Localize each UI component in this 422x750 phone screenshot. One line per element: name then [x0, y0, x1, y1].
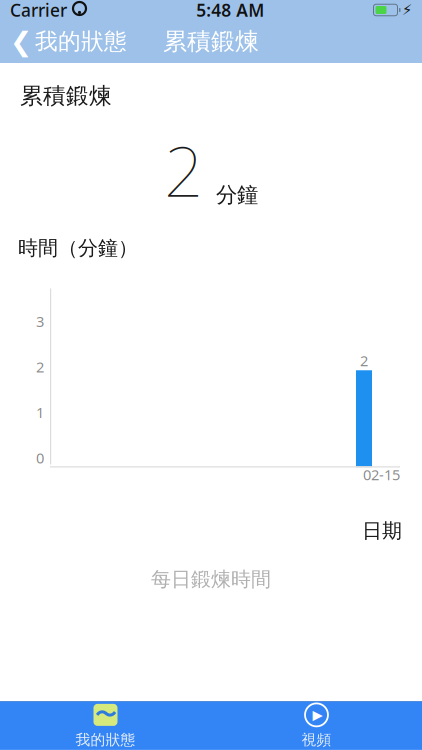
staticText: ▶ — [312, 707, 322, 722]
staticText: 0 — [36, 448, 44, 467]
staticText: 〜 — [95, 702, 116, 728]
staticText: 我的狀態 — [35, 28, 127, 55]
staticText: ⚡︎ — [402, 2, 412, 18]
staticText: 3 — [36, 311, 44, 331]
staticText: 2 — [36, 357, 44, 376]
staticText: 5:48 AM — [196, 0, 264, 21]
staticText: 視頻 — [301, 731, 331, 749]
staticText: 累積鍛煉 — [20, 82, 112, 110]
staticText: 我的狀態 — [75, 731, 135, 749]
staticText: 分鐘 — [216, 182, 258, 208]
button[interactable]: ❮ — [0, 20, 127, 63]
staticText: 1 — [36, 402, 44, 422]
staticText: Carrier — [10, 0, 67, 21]
button[interactable]: 〜 — [0, 698, 211, 750]
button[interactable]: ▶ — [211, 698, 422, 750]
staticText: 日期 — [362, 518, 402, 543]
staticText: 每日鍛煉時間 — [151, 567, 271, 592]
staticText: 2 — [164, 124, 204, 216]
staticText: 02-15 — [363, 465, 400, 484]
staticText: 時間（分鐘） — [18, 236, 138, 260]
staticText: 累積鍛煉 — [163, 27, 259, 56]
staticText: 2 — [360, 351, 368, 370]
staticText: ❮ — [10, 26, 32, 57]
